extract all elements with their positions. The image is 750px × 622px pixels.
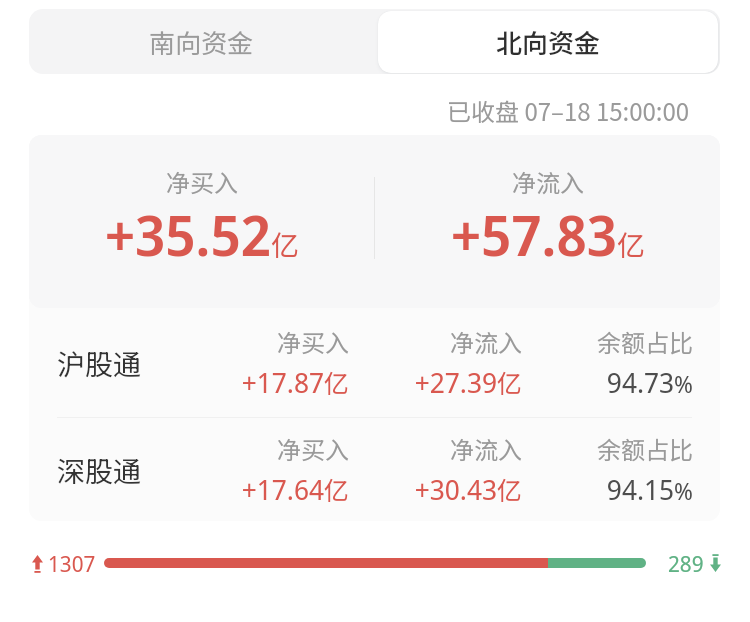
staticText: 南向资金 [149,23,254,61]
staticText: +17.64亿 [129,470,349,508]
staticText: 净流入 [302,324,522,359]
other: Declining stocks [710,554,721,572]
staticText: 1307 [48,548,96,578]
staticText: +30.43亿 [302,470,522,508]
staticText: +17.87亿 [129,363,349,401]
staticText: +57.83亿 [451,196,645,272]
staticText: 289 [668,548,704,578]
button[interactable]: 北向资金 [378,11,718,73]
button[interactable]: Advancing stocks [26,546,724,580]
staticText: 净买入 [166,164,238,199]
button[interactable]: 南向资金 [29,9,374,74]
staticText: 94.15% [473,470,693,508]
staticText: 净买入 [129,431,349,466]
staticText: 余额占比 [473,324,693,359]
button[interactable]: 深股通 [0,415,750,521]
staticText: +27.39亿 [302,363,522,401]
staticText: 94.73% [473,363,693,401]
button[interactable]: 净流入 [375,135,720,308]
staticText: 北向资金 [496,23,601,61]
staticText: 余额占比 [473,431,693,466]
staticText: 净流入 [512,164,584,199]
staticText: 净流入 [302,431,522,466]
staticText: 净买入 [129,324,349,359]
button[interactable]: 沪股通 [0,308,750,414]
staticText: 已收盘 07–18 15:00:00 [447,93,690,128]
other: Advancing stocks [32,555,43,573]
staticText: 深股通 [57,450,142,491]
button[interactable]: 净买入 [29,135,374,308]
staticText: +35.52亿 [105,196,299,272]
staticText: 沪股通 [57,343,142,384]
